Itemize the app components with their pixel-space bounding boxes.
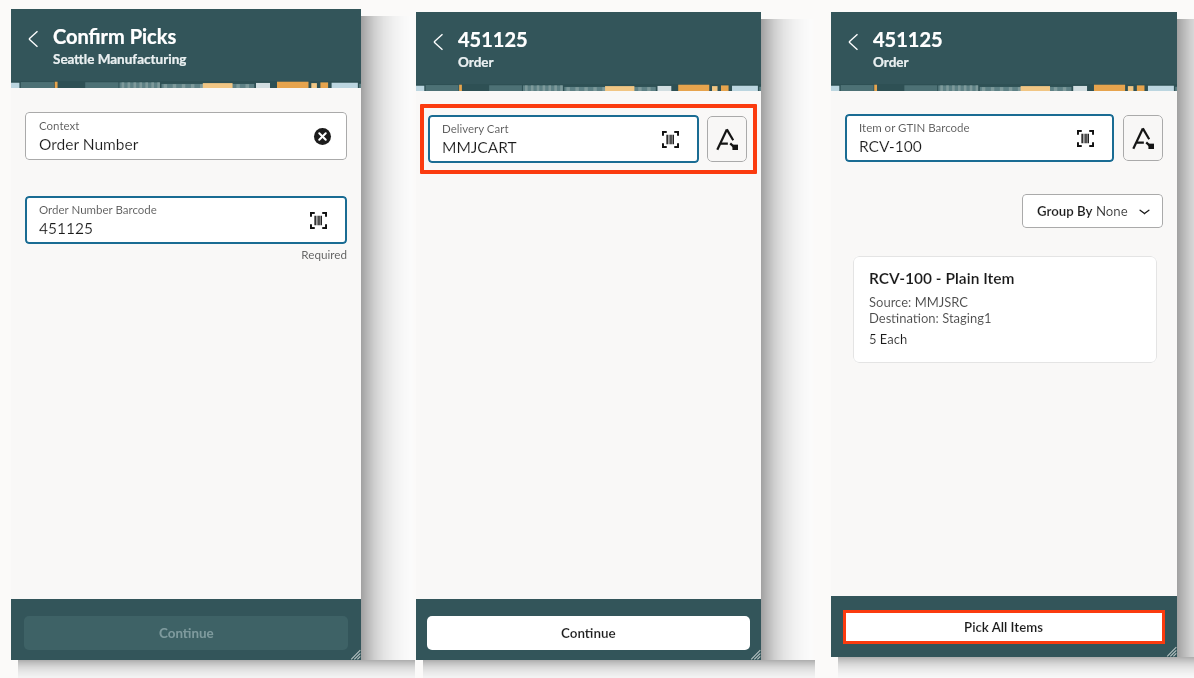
button[interactable]: Clear: [314, 128, 331, 145]
staticText: Order Number Barcode: [39, 203, 157, 217]
staticText: RCV-100: [859, 137, 922, 156]
button[interactable]: Scan barcode: [1077, 130, 1094, 147]
button[interactable]: Manual entry: [707, 116, 747, 162]
staticText: Order: [873, 54, 909, 70]
staticText: Destination: Staging1: [869, 310, 992, 326]
button[interactable]: Back: [427, 31, 449, 53]
button[interactable]: Back: [842, 31, 864, 53]
button[interactable]: Continue: [24, 616, 348, 650]
staticText: None: [1096, 203, 1128, 219]
staticText: Group By: [1037, 203, 1096, 219]
staticText: Item or GTIN Barcode: [859, 121, 970, 135]
staticText: Required: [25, 247, 347, 261]
staticText: Order Number: [39, 135, 139, 154]
staticText: Continue: [159, 625, 214, 641]
button[interactable]: Scan barcode: [662, 131, 679, 148]
staticText: Delivery Cart: [442, 122, 509, 136]
staticText: Confirm Picks: [53, 24, 177, 48]
staticText: Pick All Items: [964, 619, 1044, 635]
staticText: Context: [39, 119, 80, 133]
button[interactable]: Back: [22, 28, 44, 50]
button[interactable]: Scan barcode: [310, 212, 327, 229]
button[interactable]: Pick All Items: [846, 613, 1162, 641]
staticText: Source: MMJSRC: [869, 294, 969, 310]
staticText: 5 Each: [869, 331, 908, 347]
button[interactable]: Manual entry: [1123, 115, 1163, 161]
button[interactable]: Delivery Cart: [428, 115, 699, 163]
staticText: 451125: [873, 27, 943, 51]
staticText: Continue: [561, 625, 616, 641]
button[interactable]: Context: [25, 112, 347, 160]
button[interactable]: Continue: [427, 616, 750, 650]
staticText: Order: [458, 54, 494, 70]
button[interactable]: Item or GTIN Barcode: [845, 114, 1114, 162]
staticText: RCV-100 - Plain Item: [869, 269, 1015, 288]
staticText: 451125: [39, 219, 93, 238]
button[interactable]: RCV-100 - Plain Item: [853, 256, 1157, 363]
staticText: 451125: [458, 27, 528, 51]
button[interactable]: Group By: [1022, 194, 1163, 228]
staticText: Seattle Manufacturing: [53, 51, 187, 67]
button[interactable]: Order Number Barcode: [25, 196, 347, 244]
staticText: MMJCART: [442, 138, 517, 157]
